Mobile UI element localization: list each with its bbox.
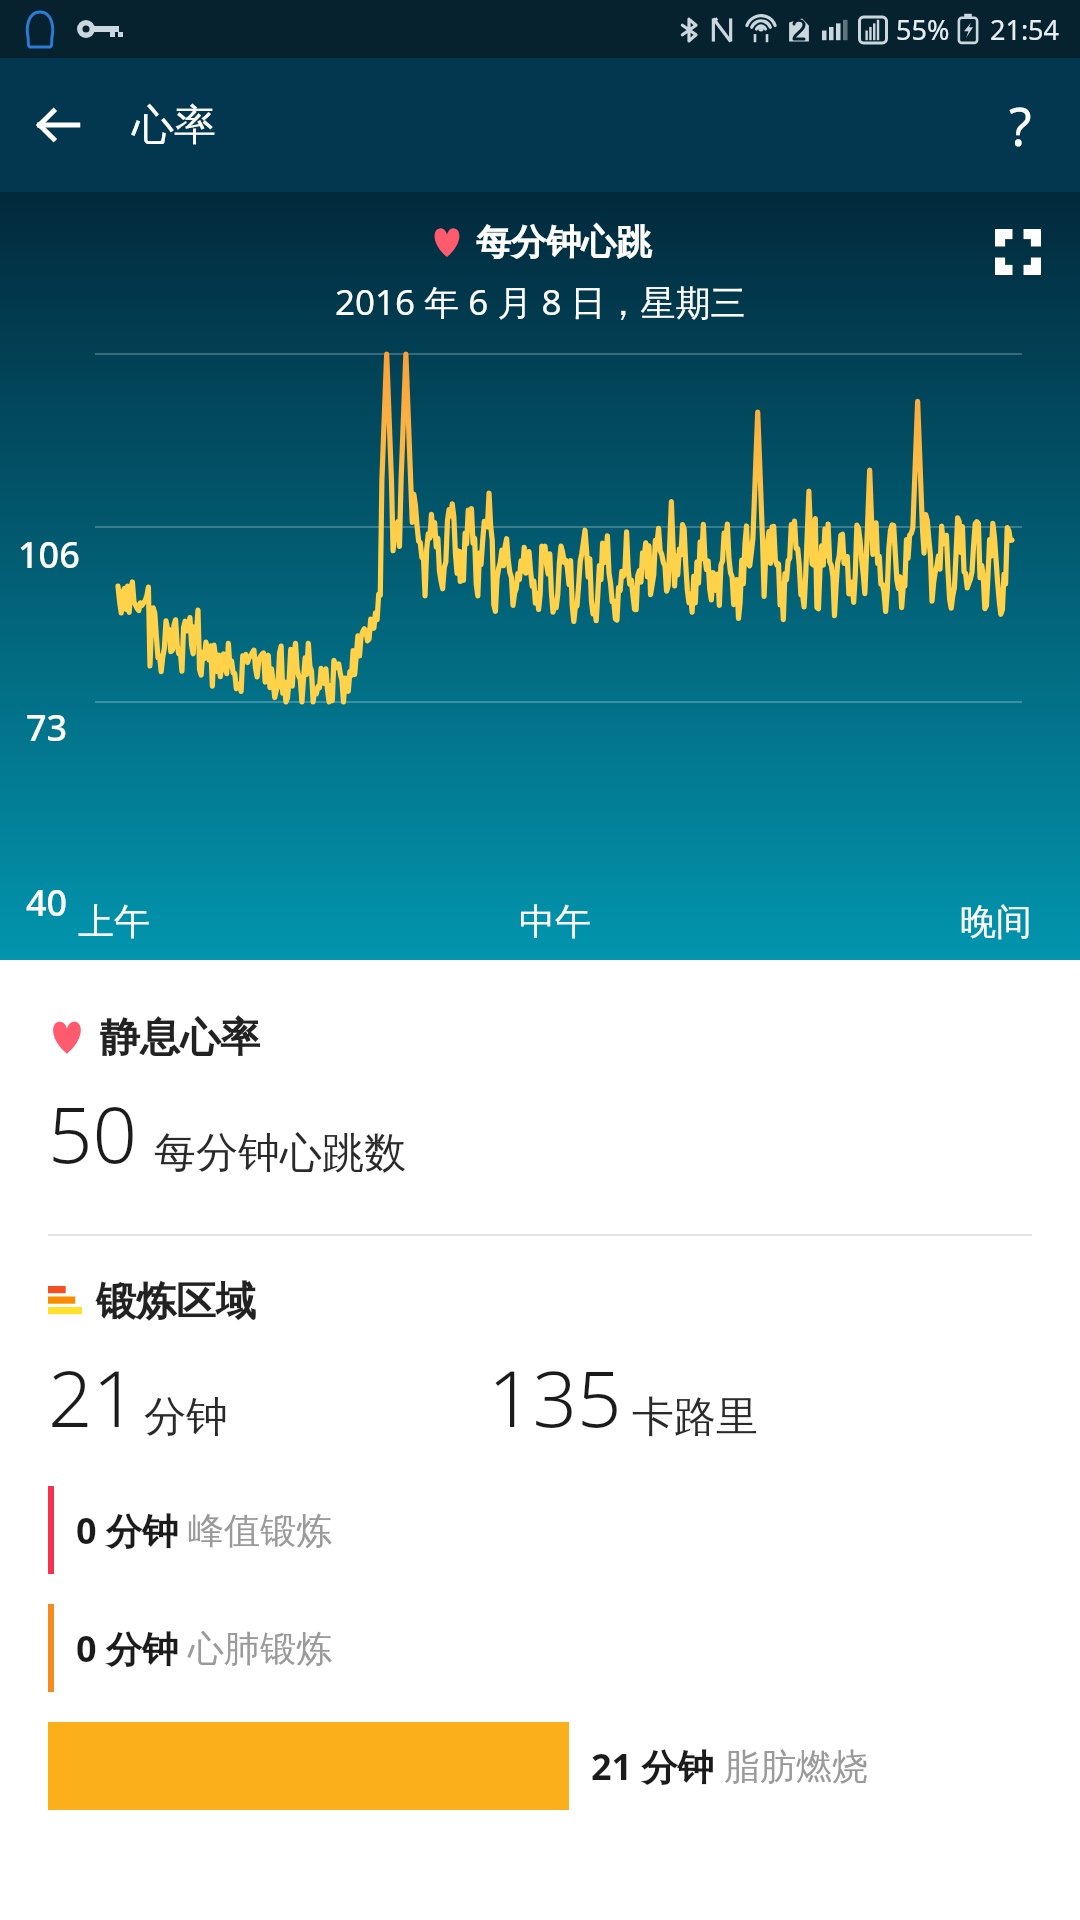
button[interactable]: 0 分钟 bbox=[48, 1604, 1080, 1692]
button[interactable]: Back bbox=[22, 89, 94, 161]
staticText: 峰值锻炼 bbox=[188, 1508, 332, 1553]
staticText: 135 bbox=[488, 1344, 622, 1450]
staticText: 分钟 bbox=[144, 1391, 228, 1444]
staticText: 晚间 bbox=[714, 899, 1032, 944]
staticText: 2016 年 6 月 8 日，星期三 bbox=[335, 278, 746, 326]
staticText: 21 bbox=[48, 1344, 138, 1450]
staticText: 心率 bbox=[132, 99, 216, 152]
button[interactable]: Help bbox=[982, 87, 1058, 163]
staticText: 21 分钟 bbox=[591, 1742, 714, 1791]
staticText: 脂肪燃烧 bbox=[724, 1744, 868, 1789]
staticText: 55% bbox=[896, 11, 950, 48]
staticText: 静息心率 bbox=[100, 1012, 260, 1062]
staticText: 每分钟心跳 bbox=[476, 220, 651, 264]
staticText: 每分钟心跳数 bbox=[154, 1127, 406, 1180]
staticText: 上午 bbox=[78, 899, 396, 944]
staticText: 40 bbox=[26, 878, 68, 927]
staticText: 卡路里 bbox=[632, 1391, 758, 1444]
staticText: 73 bbox=[26, 703, 68, 752]
staticText: 106 bbox=[18, 530, 80, 579]
staticText: ? bbox=[1009, 90, 1032, 161]
staticText: 中午 bbox=[396, 899, 714, 944]
button[interactable]: 0 分钟 bbox=[48, 1486, 1080, 1574]
staticText: 心肺锻炼 bbox=[188, 1626, 332, 1671]
staticText: 锻炼区域 bbox=[96, 1276, 256, 1326]
staticText: 0 分钟 bbox=[76, 1624, 178, 1673]
staticText: 21:54 bbox=[990, 11, 1060, 48]
staticText: 50 bbox=[48, 1080, 138, 1186]
button[interactable]: Fullscreen bbox=[978, 212, 1058, 292]
button[interactable]: 21 分钟 bbox=[48, 1722, 1080, 1810]
staticText: 0 分钟 bbox=[76, 1506, 178, 1555]
